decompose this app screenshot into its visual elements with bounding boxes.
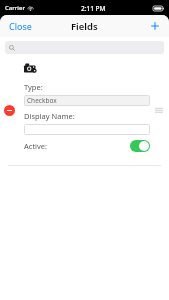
- staticText: 2:11 PM: [81, 4, 106, 13]
- staticText: Active:: [24, 141, 48, 151]
- button[interactable]: Search: [5, 41, 164, 54]
- button[interactable]: Delete field: [4, 105, 15, 116]
- button[interactable]: Display Name field: [24, 124, 150, 135]
- button[interactable]: Checkbox: [24, 95, 150, 106]
- staticText: Close: [9, 20, 32, 32]
- staticText: Carrier: [5, 4, 25, 12]
- button[interactable]: Add field: [141, 15, 169, 37]
- button[interactable]: Reorder: [152, 103, 166, 117]
- staticText: Checkbox: [27, 96, 57, 105]
- staticText: Fields: [71, 20, 98, 33]
- button[interactable]: Close: [0, 15, 41, 37]
- staticText: Type:: [24, 82, 43, 92]
- button[interactable]: Active toggle: [130, 140, 150, 152]
- staticText: Display Name:: [24, 111, 75, 121]
